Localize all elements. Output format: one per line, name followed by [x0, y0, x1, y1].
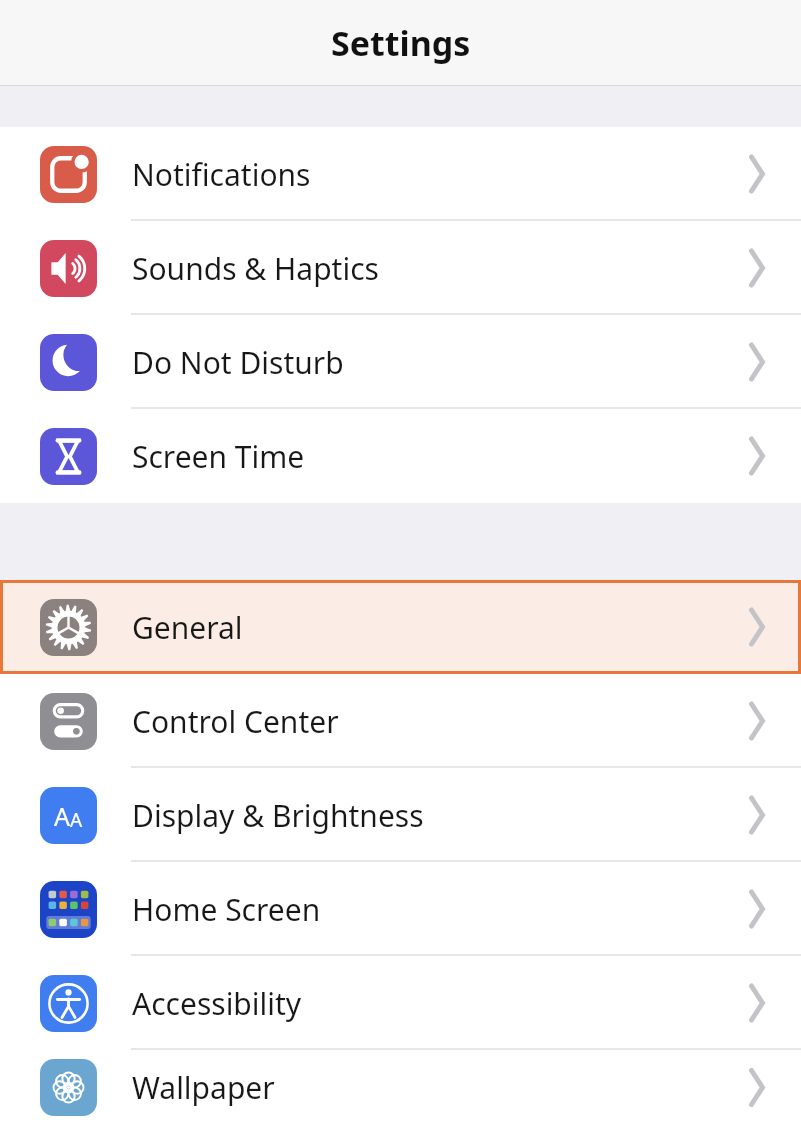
staticText: Wallpaper — [132, 1067, 275, 1108]
staticText: Home Screen — [132, 889, 321, 930]
button[interactable]: Notifications — [0, 127, 801, 221]
staticText: Control Center — [132, 701, 339, 742]
button[interactable]: General — [0, 580, 801, 674]
button[interactable]: Do Not Disturb — [0, 315, 801, 409]
button[interactable]: Sounds & Haptics — [0, 221, 801, 315]
staticText: Accessibility — [132, 983, 302, 1024]
staticText: A — [70, 807, 83, 833]
staticText: General — [132, 607, 243, 648]
button[interactable]: Home Screen — [0, 862, 801, 956]
button[interactable]: Accessibility — [0, 956, 801, 1050]
staticText: Notifications — [132, 154, 311, 195]
button[interactable]: Wallpaper — [0, 1050, 801, 1125]
button[interactable]: A — [0, 768, 801, 862]
staticText: Screen Time — [132, 436, 305, 477]
button[interactable]: Control Center — [0, 674, 801, 768]
staticText: Settings — [331, 20, 471, 66]
button[interactable]: Screen Time — [0, 409, 801, 503]
staticText: Sounds & Haptics — [132, 248, 379, 289]
staticText: A — [54, 799, 70, 833]
staticText: Do Not Disturb — [132, 342, 344, 383]
staticText: Display & Brightness — [132, 795, 424, 836]
